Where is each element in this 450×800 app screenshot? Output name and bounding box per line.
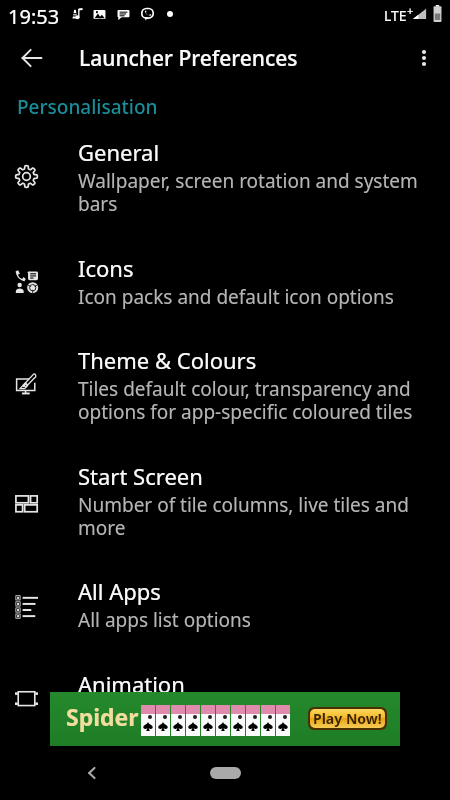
staticText: Icons bbox=[78, 253, 134, 283]
staticText: Play Now! bbox=[313, 709, 382, 728]
staticText: 19:53 bbox=[8, 3, 60, 30]
staticText: Animation bbox=[78, 669, 185, 699]
button[interactable]: All Apps bbox=[0, 557, 450, 649]
staticText: Start Screen bbox=[78, 461, 203, 491]
button[interactable]: Icons bbox=[0, 234, 450, 326]
staticText: LTE bbox=[384, 6, 407, 25]
staticText: options for app-specific coloured tiles bbox=[78, 399, 413, 425]
staticText: All apps list options bbox=[78, 607, 251, 633]
staticText: Wallpaper, screen rotation and system bbox=[78, 168, 418, 194]
staticText: Personalisation bbox=[17, 94, 158, 120]
staticText: bars bbox=[78, 191, 118, 217]
staticText: Spider bbox=[66, 701, 139, 732]
staticText: Launcher Preferences bbox=[79, 44, 298, 73]
button[interactable]: Start Screen bbox=[0, 442, 450, 558]
button[interactable]: General bbox=[0, 118, 450, 234]
staticText: General bbox=[78, 137, 160, 167]
staticText: Icon packs and default icon options bbox=[78, 284, 394, 310]
button[interactable]: Animation bbox=[0, 650, 450, 690]
staticText: more bbox=[78, 515, 126, 541]
button[interactable]: Back bbox=[10, 36, 54, 80]
staticText: Number of tile columns, live tiles and bbox=[78, 492, 409, 518]
button[interactable]: More options bbox=[402, 36, 446, 80]
staticText: Theme & Colours bbox=[78, 345, 257, 375]
button[interactable]: Theme & Colours bbox=[0, 326, 450, 442]
button[interactable]: Back bbox=[72, 753, 112, 793]
staticText: Tiles default colour, transparency and bbox=[78, 376, 411, 402]
button[interactable]: Home bbox=[210, 767, 241, 779]
staticText: + bbox=[407, 3, 414, 18]
staticText: All Apps bbox=[78, 576, 161, 606]
button[interactable]: Spider bbox=[50, 692, 400, 746]
